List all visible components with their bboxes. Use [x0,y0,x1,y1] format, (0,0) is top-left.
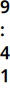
staticText: 9:41 [0,0,10,87]
